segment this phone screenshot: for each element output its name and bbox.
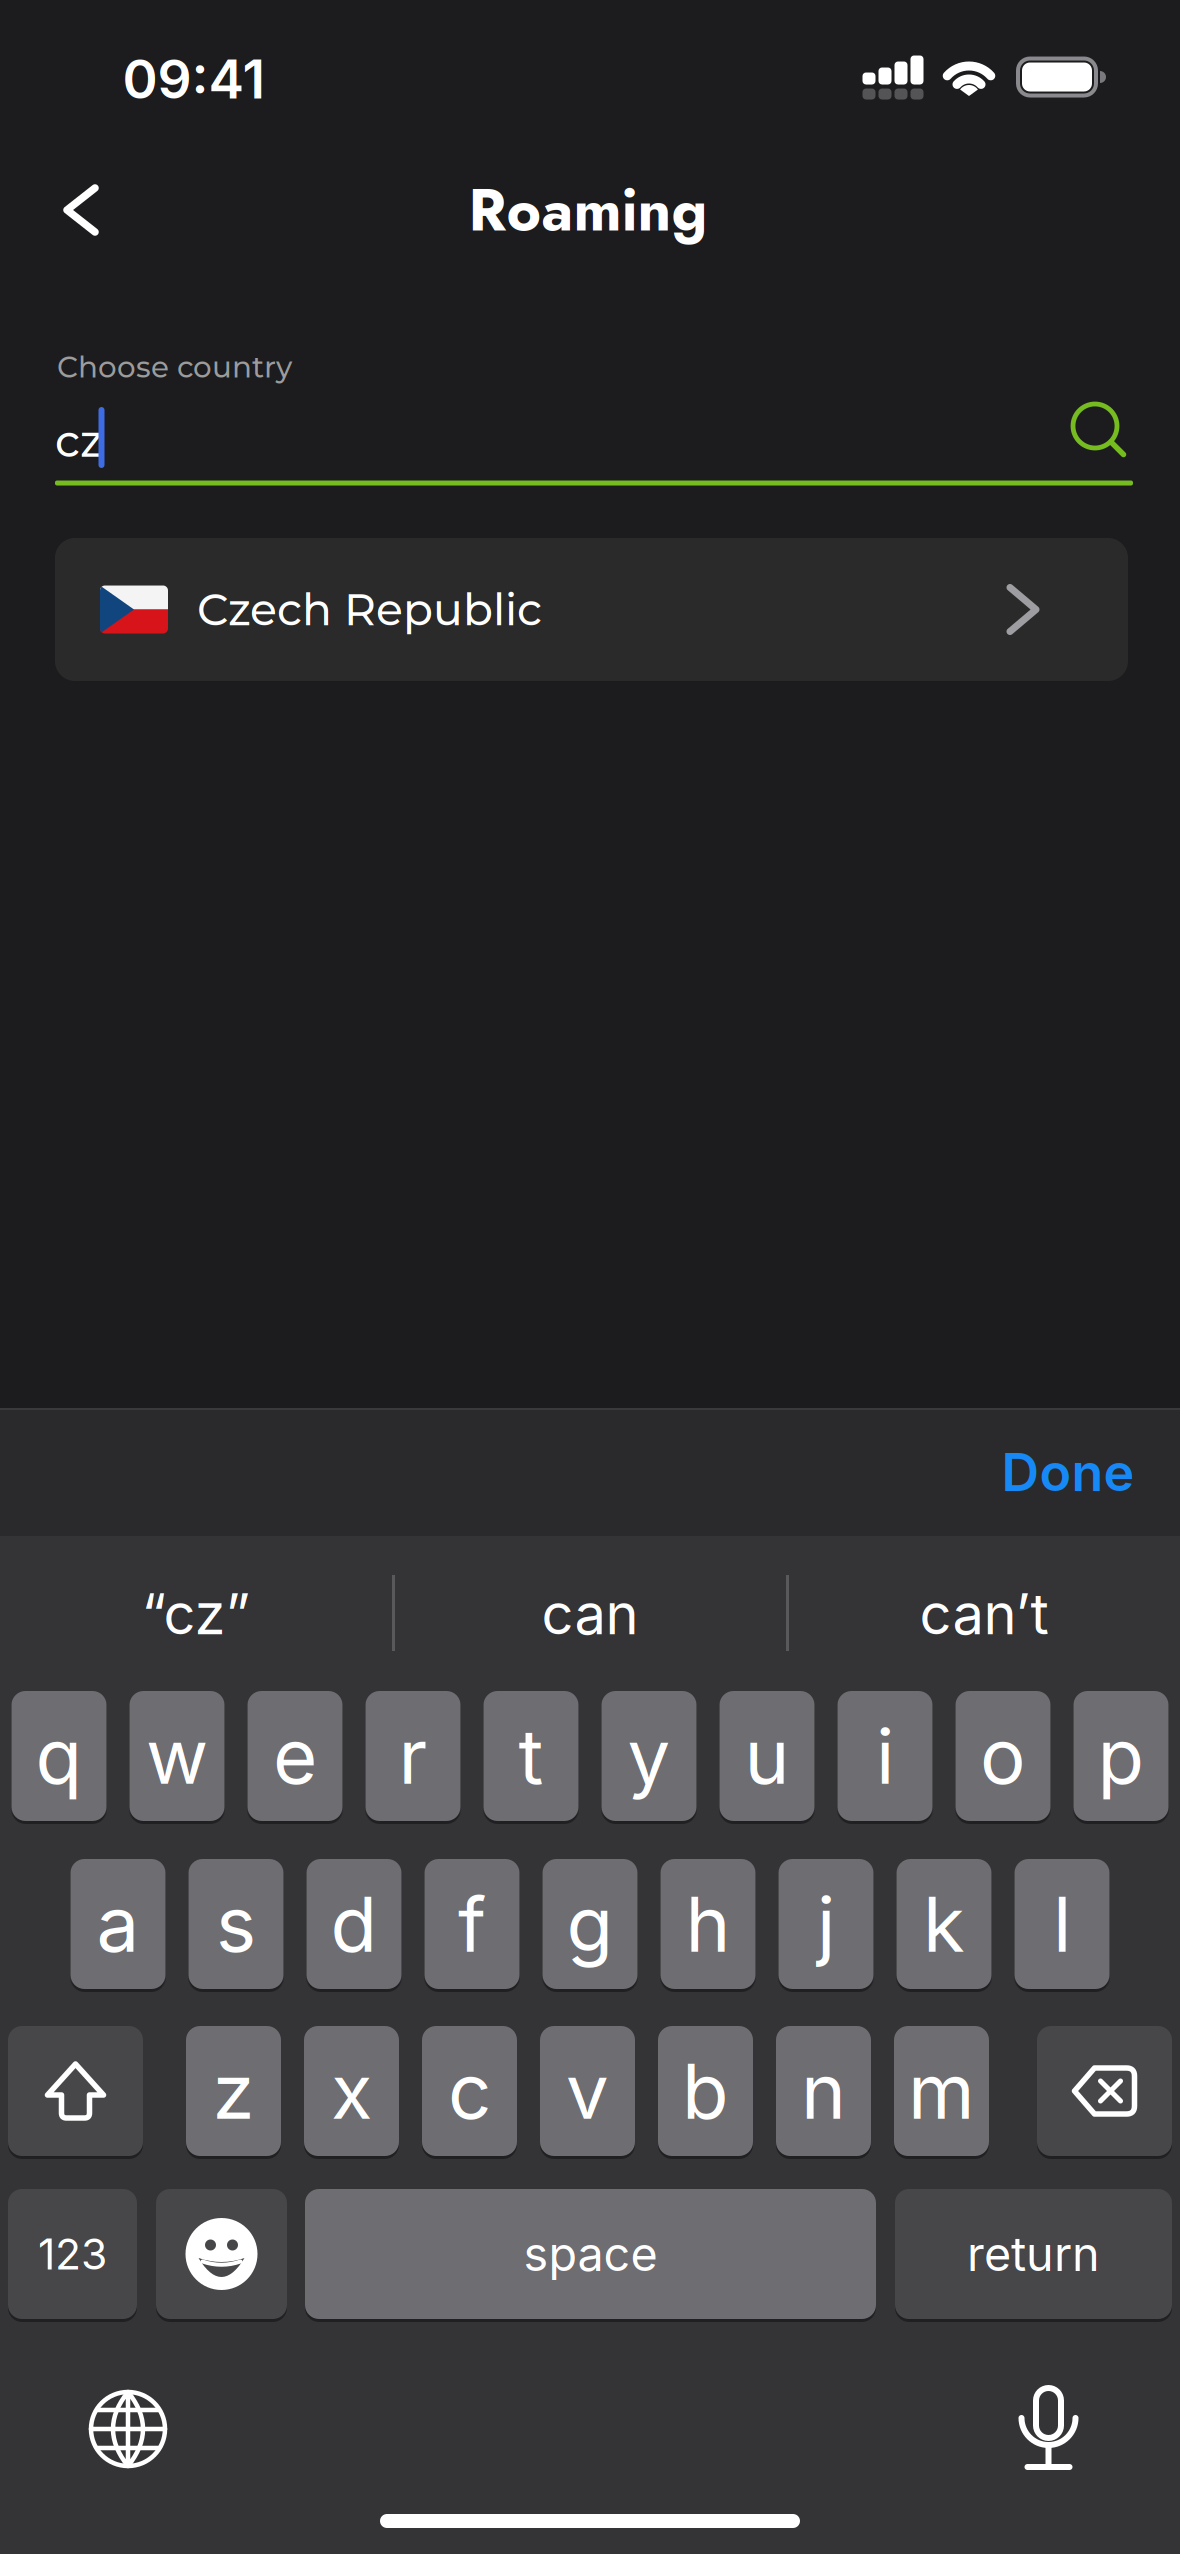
- button[interactable]: Czech Republic: [55, 538, 1128, 681]
- staticText: y: [627, 1710, 670, 1802]
- staticText: g: [566, 1878, 613, 1970]
- staticText: a: [96, 1878, 139, 1970]
- button[interactable]: s: [188, 1859, 283, 1989]
- button[interactable]: return: [895, 2189, 1172, 2319]
- staticText: n: [801, 2045, 846, 2137]
- button[interactable]: u: [719, 1691, 814, 1821]
- staticText: s: [216, 1878, 256, 1970]
- button[interactable]: can: [395, 1544, 785, 1684]
- button[interactable]: 123: [8, 2189, 137, 2319]
- button[interactable]: w: [129, 1691, 224, 1821]
- staticText: o: [980, 1710, 1026, 1802]
- button[interactable]: g: [542, 1859, 637, 1989]
- button[interactable]: b: [658, 2026, 753, 2156]
- button[interactable]: r: [365, 1691, 460, 1821]
- button[interactable]: “cz”: [1, 1544, 391, 1684]
- staticText: m: [908, 2045, 975, 2137]
- button[interactable]: Choose country: [55, 370, 1133, 490]
- button[interactable]: q: [11, 1691, 106, 1821]
- staticText: u: [744, 1710, 789, 1802]
- button[interactable]: h: [660, 1859, 755, 1989]
- staticText: v: [566, 2045, 609, 2137]
- staticText: “cz”: [141, 1580, 250, 1648]
- button[interactable]: a: [70, 1859, 165, 1989]
- staticText: c: [448, 2045, 491, 2137]
- staticText: can’t: [919, 1580, 1048, 1648]
- staticText: Roaming: [468, 168, 707, 252]
- button[interactable]: Done: [1001, 1440, 1134, 1503]
- staticText: can: [541, 1580, 638, 1648]
- staticText: d: [330, 1878, 377, 1970]
- staticText: z: [212, 2045, 254, 2137]
- staticText: k: [923, 1878, 965, 1970]
- button[interactable]: e: [247, 1691, 342, 1821]
- button[interactable]: v: [540, 2026, 635, 2156]
- staticText: w: [146, 1710, 208, 1802]
- button[interactable]: Back: [61, 184, 101, 236]
- button[interactable]: Shift: [8, 2026, 143, 2156]
- button[interactable]: n: [776, 2026, 871, 2156]
- button[interactable]: m: [894, 2026, 989, 2156]
- staticText: Done: [1001, 1440, 1134, 1503]
- staticText: t: [518, 1710, 543, 1802]
- button[interactable]: p: [1073, 1691, 1168, 1821]
- button[interactable]: x: [304, 2026, 399, 2156]
- button[interactable]: Dictation: [1021, 2385, 1081, 2473]
- staticText: Choose country: [57, 349, 292, 385]
- staticText: 09:41: [122, 47, 265, 111]
- staticText: space: [523, 2226, 657, 2282]
- button[interactable]: z: [186, 2026, 281, 2156]
- button[interactable]: Emoji: [156, 2189, 287, 2319]
- button[interactable]: f: [424, 1859, 519, 1989]
- staticText: i: [876, 1710, 894, 1802]
- button[interactable]: Next keyboard: [88, 2389, 168, 2469]
- staticText: j: [817, 1878, 835, 1970]
- button[interactable]: y: [601, 1691, 696, 1821]
- button[interactable]: o: [955, 1691, 1050, 1821]
- staticText: x: [331, 2045, 372, 2137]
- button[interactable]: Delete: [1037, 2026, 1172, 2156]
- staticText: Czech Republic: [197, 583, 542, 636]
- staticText: r: [398, 1710, 427, 1802]
- button[interactable]: k: [896, 1859, 991, 1989]
- button[interactable]: t: [483, 1691, 578, 1821]
- button[interactable]: c: [422, 2026, 517, 2156]
- staticText: l: [1053, 1878, 1071, 1970]
- staticText: h: [685, 1878, 730, 1970]
- staticText: 123: [38, 2228, 107, 2280]
- button[interactable]: can’t: [789, 1544, 1179, 1684]
- button[interactable]: d: [306, 1859, 401, 1989]
- staticText: return: [967, 2226, 1100, 2282]
- staticText: cz: [55, 414, 103, 468]
- button[interactable]: j: [778, 1859, 873, 1989]
- button[interactable]: l: [1014, 1859, 1109, 1989]
- button[interactable]: i: [837, 1691, 932, 1821]
- button[interactable]: space: [305, 2189, 876, 2319]
- staticText: b: [682, 2045, 729, 2137]
- staticText: q: [35, 1710, 82, 1802]
- staticText: p: [1097, 1710, 1144, 1802]
- staticText: e: [273, 1710, 317, 1802]
- staticText: f: [458, 1878, 486, 1970]
